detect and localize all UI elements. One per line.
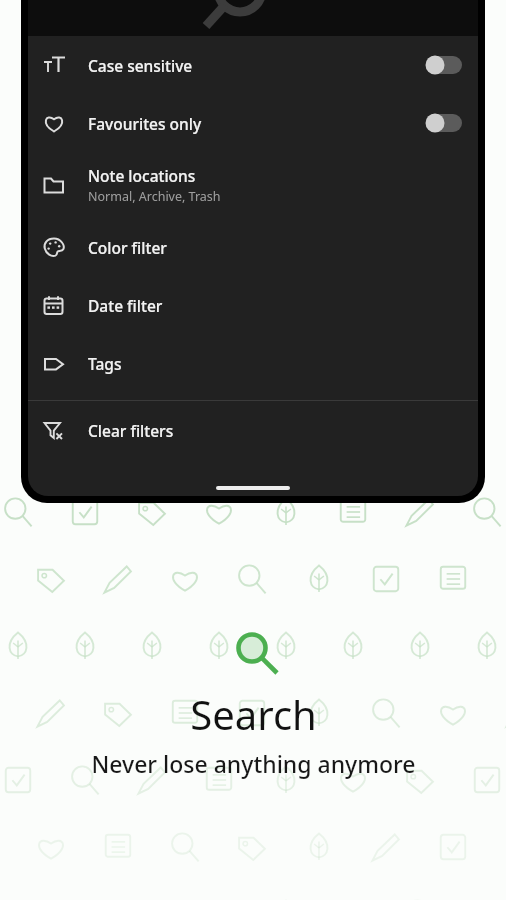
button[interactable]: Date filter: [28, 276, 478, 334]
staticText: Never lose anything anymore: [91, 748, 416, 779]
staticText: Clear filters: [88, 420, 174, 441]
staticText: Search: [190, 687, 317, 741]
staticText: Date filter: [88, 295, 163, 316]
staticText: Favourites only: [88, 113, 202, 134]
button[interactable]: Case sensitive: [28, 36, 478, 94]
staticText: Color filter: [88, 237, 167, 258]
staticText: Case sensitive: [88, 55, 193, 76]
button[interactable]: Tags: [28, 334, 478, 392]
staticText: Normal, Archive, Trash: [88, 188, 221, 205]
button[interactable]: Toggle Case sensitive: [422, 53, 462, 77]
button[interactable]: Favourites only: [28, 94, 478, 152]
button[interactable]: Color filter: [28, 218, 478, 276]
button[interactable]: Clear filters: [28, 401, 478, 459]
staticText: Note locations: [88, 165, 196, 186]
staticText: Tags: [88, 353, 122, 374]
button[interactable]: Note locations: [28, 152, 478, 218]
button[interactable]: Toggle Favourites only: [422, 111, 462, 135]
